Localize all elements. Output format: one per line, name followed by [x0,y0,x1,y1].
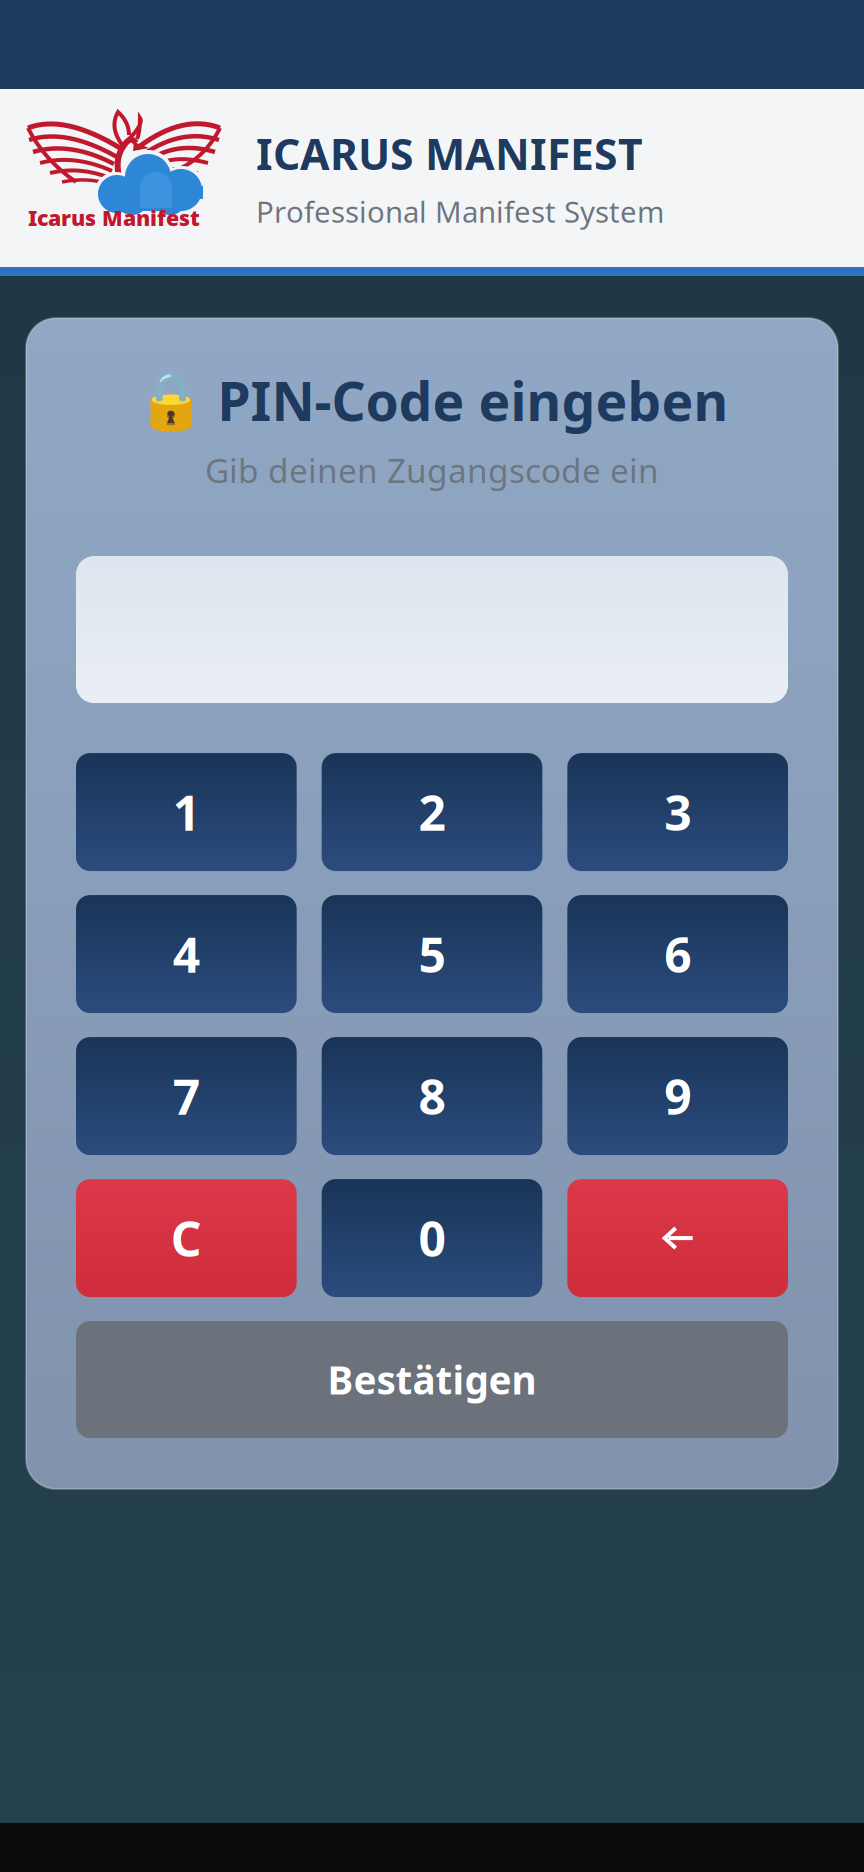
staticText: 1 [173,780,200,844]
staticText: Gib deinen Zugangscode ein [205,448,659,492]
button[interactable]: 8 [322,1037,542,1155]
staticText: 6 [664,922,691,986]
button[interactable]: 2 [322,753,542,871]
button[interactable]: 6 [567,895,788,1013]
button[interactable]: 9 [567,1037,788,1155]
button[interactable]: Löschen [567,1179,788,1297]
staticText: 7 [173,1064,200,1128]
button[interactable]: C [76,1179,297,1297]
staticText: 5 [418,922,445,986]
button[interactable]: 3 [567,753,788,871]
staticText: C [171,1206,202,1270]
button[interactable]: 4 [76,895,297,1013]
button[interactable]: PIN-Anzeige [76,556,788,703]
button[interactable]: 5 [322,895,542,1013]
staticText: 0 [418,1206,445,1270]
staticText: Professional Manifest System [256,192,664,231]
staticText: 4 [173,922,200,986]
staticText: 9 [664,1064,691,1128]
staticText: 🔒 [135,368,205,432]
staticText: Icarus Manifest [28,204,200,232]
button[interactable]: 1 [76,753,297,871]
staticText: 8 [418,1064,445,1128]
button[interactable]: 7 [76,1037,297,1155]
button[interactable]: Bestätigen [76,1321,788,1438]
staticText: 3 [664,780,691,844]
staticText: PIN-Code eingeben [217,365,728,436]
staticText: 2 [418,780,445,844]
staticText: ICARUS MANIFEST [256,125,643,182]
staticText: Bestätigen [327,1354,536,1405]
button[interactable]: 0 [322,1179,542,1297]
